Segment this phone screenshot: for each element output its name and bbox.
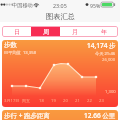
button[interactable]: 月 (60, 26, 89, 37)
button[interactable]: 年 (89, 26, 118, 37)
staticText: 日 (14, 28, 20, 36)
staticText: 1,300 (105, 89, 116, 95)
staticText: 21 (75, 98, 80, 104)
staticText: 步行 + 跑步距离 (4, 111, 51, 120)
staticText: 19 (51, 98, 56, 104)
staticText: 中国移动 (12, 2, 33, 9)
staticText: 18 (39, 98, 44, 104)
staticText: 图表汇总 (46, 12, 75, 21)
staticText: 周 (43, 28, 49, 36)
staticText: 26,000 (102, 57, 116, 63)
staticText: 23 (99, 98, 104, 104)
staticText: 20 (63, 98, 68, 104)
staticText: 年 (101, 28, 107, 36)
staticText: 今天 21:46 (95, 51, 116, 57)
staticText: 22 (87, 98, 92, 104)
button[interactable]: 步数 (2, 40, 118, 107)
staticText: 23:05 (53, 2, 67, 9)
staticText: 95% (90, 2, 101, 9)
button[interactable]: 日 (2, 26, 31, 37)
button[interactable]: 步行 + 跑步距离 (2, 110, 118, 120)
staticText: 步数 (4, 41, 17, 49)
button[interactable]: 周 (31, 26, 60, 37)
staticText: 3月17日 周五 (4, 98, 31, 104)
staticText: 月 (72, 28, 78, 36)
staticText: 12.66 公里 (84, 111, 116, 120)
staticText: 日平均值 13,358 (4, 50, 37, 56)
staticText: 14,174 步 (87, 41, 116, 50)
